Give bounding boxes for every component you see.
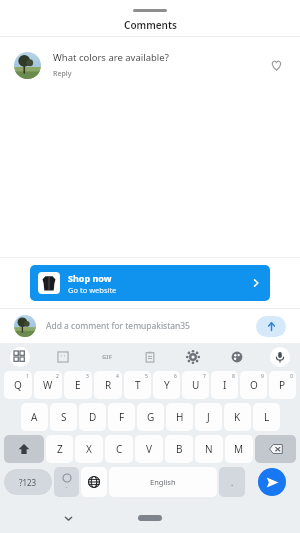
button[interactable]: Z xyxy=(46,435,73,463)
button[interactable]: Home xyxy=(138,515,162,521)
button[interactable]: Change language xyxy=(81,467,107,497)
button[interactable]: F xyxy=(108,403,135,431)
staticText: L xyxy=(264,410,270,424)
staticText: Q xyxy=(14,378,22,392)
button[interactable]: Voice input xyxy=(270,347,290,367)
button[interactable]: G xyxy=(137,403,164,431)
button[interactable]: Shift xyxy=(4,435,44,463)
staticText: B xyxy=(176,442,183,456)
button[interactable]: C xyxy=(105,435,133,463)
button[interactable]: Backspace xyxy=(255,435,296,463)
staticText: V xyxy=(146,442,152,456)
staticText: H xyxy=(176,410,184,424)
staticText: O xyxy=(250,378,258,392)
staticText: W xyxy=(43,378,53,392)
button[interactable]: English xyxy=(109,467,217,497)
staticText: A xyxy=(31,410,38,424)
staticText: English xyxy=(150,477,176,487)
staticText: What colors are available? xyxy=(53,51,169,64)
staticText: Y xyxy=(164,378,170,392)
staticText: 5 xyxy=(145,373,148,380)
button[interactable]: L xyxy=(253,403,280,431)
staticText: Comments xyxy=(124,18,177,32)
staticText: . xyxy=(231,477,234,488)
staticText: , xyxy=(66,482,68,490)
button[interactable]: W xyxy=(34,371,62,399)
staticText: I xyxy=(223,378,227,392)
staticText: S xyxy=(61,410,67,424)
staticText: ?123 xyxy=(19,477,37,488)
button[interactable]: S xyxy=(50,403,77,431)
button[interactable]: Like comment xyxy=(266,55,286,75)
button[interactable]: GIF xyxy=(97,347,117,367)
button[interactable]: Clipboard xyxy=(140,347,160,367)
staticText: Shop now xyxy=(68,272,112,284)
button[interactable]: N xyxy=(195,435,223,463)
button[interactable]: Stickers xyxy=(53,347,73,367)
staticText: T xyxy=(135,378,141,392)
staticText: 8 xyxy=(232,373,235,380)
button[interactable]: M xyxy=(225,435,253,463)
button[interactable]: E xyxy=(64,371,92,399)
staticText: 1 xyxy=(26,373,29,380)
staticText: 4 xyxy=(116,373,119,380)
button[interactable]: Hide keyboard xyxy=(60,510,76,526)
staticText: GIF xyxy=(102,353,112,361)
button[interactable]: Add a comment for temupakistan35 xyxy=(46,320,252,332)
staticText: X xyxy=(86,442,92,456)
staticText: 9 xyxy=(261,373,264,380)
staticText: R xyxy=(105,378,112,392)
staticText: F xyxy=(119,410,125,424)
staticText: C xyxy=(116,442,123,456)
staticText: 2 xyxy=(56,373,59,380)
button[interactable]: Q xyxy=(4,371,32,399)
button[interactable]: Shop now xyxy=(30,265,270,301)
staticText: P xyxy=(279,378,286,392)
staticText: G xyxy=(147,410,155,424)
button[interactable]: D xyxy=(79,403,106,431)
button[interactable]: V xyxy=(135,435,163,463)
staticText: D xyxy=(89,410,97,424)
staticText: N xyxy=(205,442,213,456)
staticText: J xyxy=(207,410,210,424)
staticText: U xyxy=(192,378,200,392)
button[interactable]: I xyxy=(211,371,238,399)
button[interactable]: Period xyxy=(219,467,245,497)
button[interactable]: Settings xyxy=(183,347,203,367)
staticText: Z xyxy=(57,442,63,456)
button[interactable]: R xyxy=(94,371,122,399)
button[interactable]: U xyxy=(182,371,209,399)
button[interactable]: P xyxy=(269,371,296,399)
staticText: 0 xyxy=(290,373,293,380)
button[interactable]: H xyxy=(166,403,193,431)
button[interactable]: B xyxy=(165,435,193,463)
staticText: M xyxy=(234,442,244,456)
button[interactable]: ?123 xyxy=(4,469,52,495)
button[interactable]: Themes xyxy=(227,347,247,367)
button[interactable]: Post comment xyxy=(256,316,286,337)
staticText: 6 xyxy=(174,373,177,380)
button[interactable]: K xyxy=(224,403,251,431)
button[interactable]: What colors are available? xyxy=(0,37,300,93)
button[interactable]: Send xyxy=(258,468,286,496)
staticText: 7 xyxy=(203,373,206,380)
button[interactable]: Y xyxy=(153,371,180,399)
staticText: Go to website xyxy=(68,285,117,295)
button[interactable]: O xyxy=(240,371,267,399)
button[interactable]: A xyxy=(21,403,48,431)
staticText: 3 xyxy=(86,373,89,380)
button[interactable]: Emoji xyxy=(54,467,79,497)
button[interactable]: J xyxy=(195,403,222,431)
button[interactable]: T xyxy=(124,371,151,399)
button[interactable]: X xyxy=(75,435,103,463)
button[interactable]: Reply xyxy=(53,69,72,79)
staticText: K xyxy=(234,410,241,424)
staticText: E xyxy=(75,378,81,392)
button[interactable]: Apps xyxy=(10,347,30,367)
